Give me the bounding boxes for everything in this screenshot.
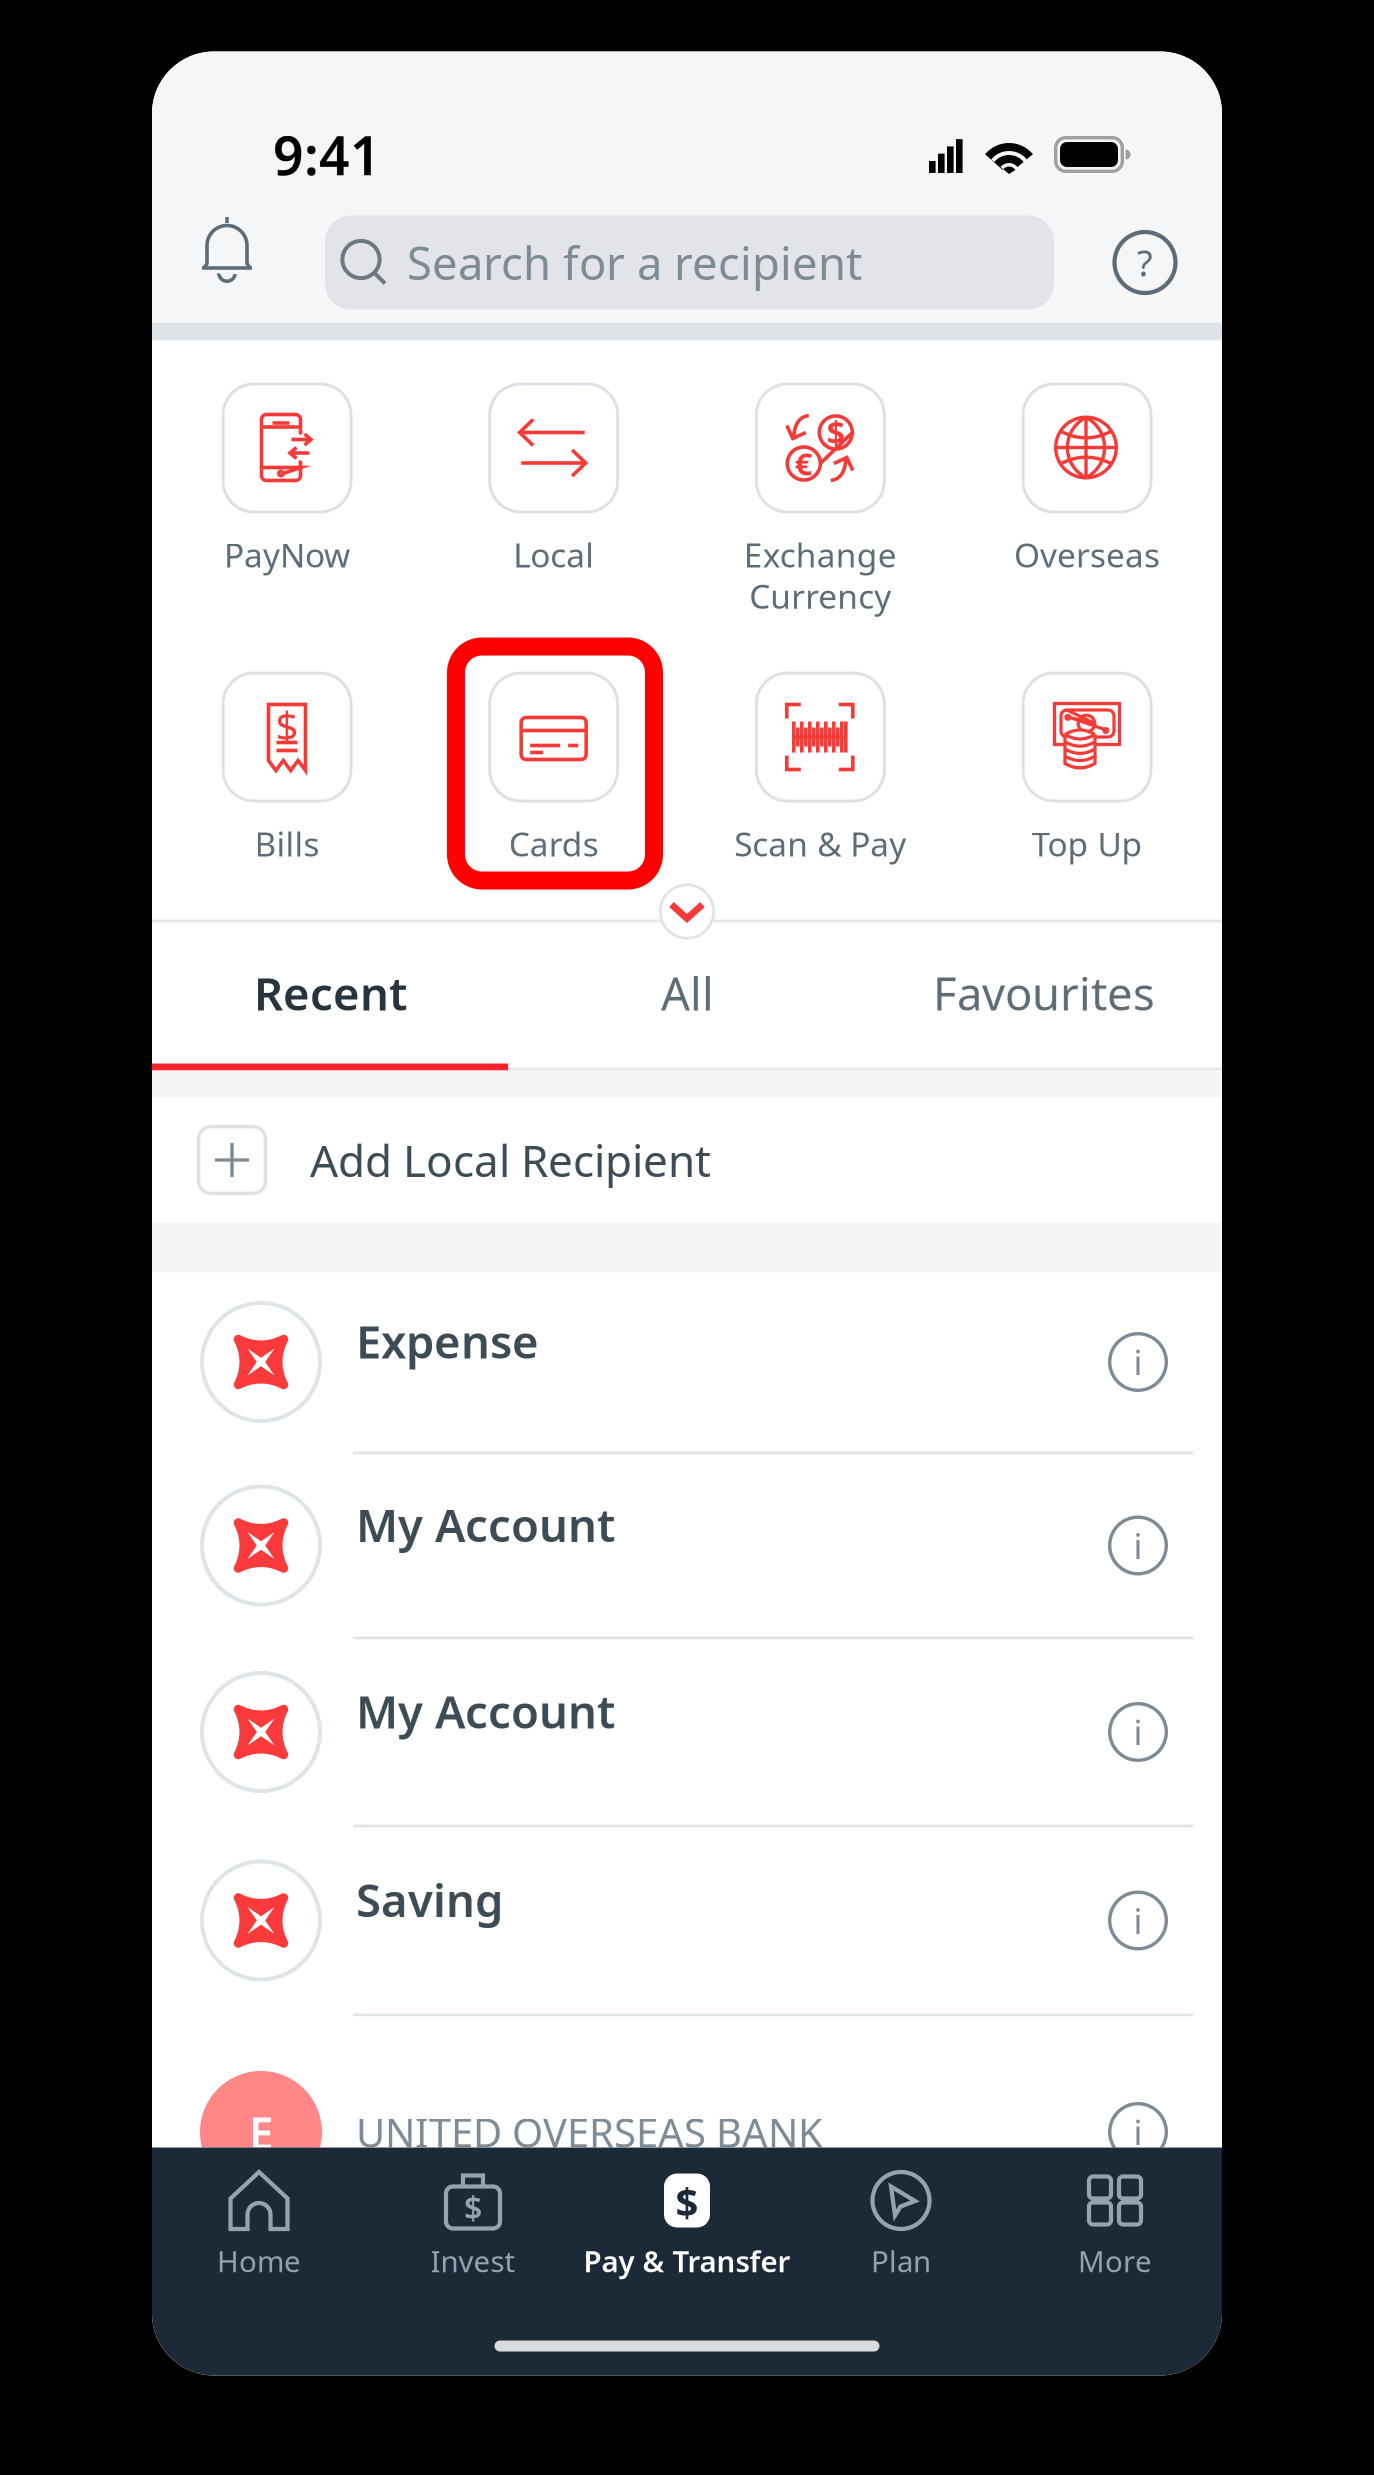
button[interactable]: All xyxy=(509,922,866,1063)
button[interactable]: Top Up xyxy=(979,671,1194,883)
button[interactable]: E xyxy=(152,2016,1222,2247)
button[interactable]: $ xyxy=(580,2169,794,2289)
button[interactable]: Recent xyxy=(152,922,509,1063)
staticText: i xyxy=(1133,1709,1142,1755)
staticText: Bills xyxy=(254,821,319,866)
staticText: € xyxy=(795,443,813,484)
staticText: Cards xyxy=(509,821,599,866)
button[interactable]: $ xyxy=(179,671,394,883)
staticText: $ xyxy=(675,2175,698,2228)
button[interactable]: Plan xyxy=(794,2169,1008,2289)
staticText: My Account xyxy=(356,1681,615,1741)
button[interactable]: Expense xyxy=(152,1272,1222,1454)
staticText: Currency xyxy=(749,574,891,618)
button[interactable]: Saving xyxy=(152,1827,1222,2016)
button[interactable]: Show more services xyxy=(659,883,715,939)
staticText: i xyxy=(1133,1522,1142,1568)
staticText: Add Local Recipient xyxy=(310,1131,711,1189)
staticText: UNITED OVERSEAS BANK xyxy=(356,2105,823,2158)
staticText: Exchange xyxy=(744,532,897,577)
staticText: $ xyxy=(275,698,298,751)
staticText: Top Up xyxy=(1031,821,1142,866)
button[interactable]: Notifications xyxy=(152,215,280,309)
staticText: $ xyxy=(464,2186,482,2229)
staticText: Search for a recipient xyxy=(407,232,862,293)
button[interactable]: More xyxy=(1008,2169,1222,2289)
staticText: Home xyxy=(217,2241,301,2280)
staticText: Recent xyxy=(254,963,407,1023)
staticText: Scan & Pay xyxy=(734,821,906,866)
staticText: More xyxy=(1078,2241,1152,2280)
staticText: Invest xyxy=(430,2241,515,2280)
button[interactable]: My Account xyxy=(152,1454,1222,1639)
staticText: Plan xyxy=(871,2241,931,2280)
button[interactable]: Help xyxy=(1099,215,1191,309)
staticText: 9:41 xyxy=(273,119,381,190)
staticText: $ xyxy=(827,411,845,454)
staticText: My Account xyxy=(356,1494,615,1555)
button[interactable]: Cards xyxy=(446,671,661,883)
staticText: E xyxy=(248,2102,273,2162)
staticText: i xyxy=(1133,1897,1142,1943)
button[interactable]: Scan & Pay xyxy=(713,671,928,883)
staticText: Expense xyxy=(356,1311,539,1371)
button[interactable]: My Account xyxy=(152,1639,1222,1827)
button[interactable]: $ xyxy=(366,2169,580,2289)
button[interactable]: $ xyxy=(713,382,928,671)
staticText: Local xyxy=(513,532,594,577)
button[interactable]: Favourites xyxy=(866,922,1222,1063)
button[interactable]: Local xyxy=(446,382,661,671)
staticText: Pay & Transfer xyxy=(583,2241,790,2280)
button[interactable]: Overseas xyxy=(979,382,1194,671)
staticText: ? xyxy=(1137,239,1153,286)
staticText: Favourites xyxy=(933,963,1155,1023)
staticText: i xyxy=(1133,2109,1142,2155)
button[interactable]: PayNow xyxy=(179,382,394,671)
staticText: PayNow xyxy=(224,532,350,577)
button[interactable]: Home xyxy=(152,2169,366,2289)
staticText: Saving xyxy=(356,1869,503,1930)
staticText: i xyxy=(1133,1339,1142,1385)
button[interactable]: Add Local Recipient xyxy=(152,1097,1222,1222)
staticText: All xyxy=(661,963,714,1023)
staticText: Overseas xyxy=(1014,532,1160,577)
